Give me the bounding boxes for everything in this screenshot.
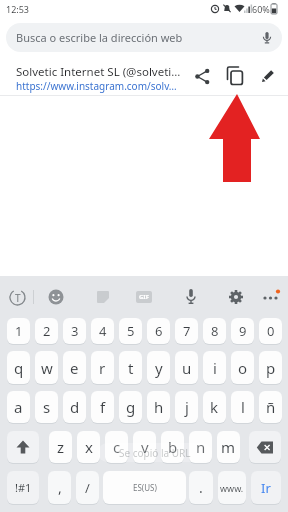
button[interactable]: , [48,471,71,504]
staticText: k [210,397,219,417]
staticText: z [57,437,65,457]
staticText: 5 [127,322,135,340]
button[interactable] [228,289,244,305]
staticText: q [14,358,24,378]
button[interactable]: z [49,431,72,463]
button[interactable]: ES(US) [103,471,186,504]
button[interactable]: k [203,391,226,423]
staticText: f [100,397,106,417]
staticText: x [85,437,93,457]
staticText: y [155,358,163,378]
button[interactable]: i [203,351,226,384]
staticText: 60% [252,3,270,15]
button[interactable]: l [231,391,254,423]
button[interactable]: x [77,431,100,463]
button[interactable]: j [175,391,198,423]
staticText: w [41,358,53,378]
button[interactable] [249,431,281,463]
staticText: o [238,358,248,378]
button[interactable]: b [161,431,184,463]
button[interactable]: g [119,391,142,423]
staticText: c [113,437,121,457]
button[interactable]: 7 [175,318,198,344]
button[interactable]: q [7,351,30,384]
button[interactable]: . [189,471,213,504]
staticText: n [196,437,206,457]
button[interactable]: !#1 [7,471,39,504]
button[interactable] [48,289,64,305]
staticText: GIF [139,293,149,301]
button[interactable]: 2 [35,318,58,344]
button[interactable]: 0 [259,318,282,344]
staticText: m [221,437,236,457]
button[interactable]: 6 [147,318,170,344]
staticText: t [128,358,134,378]
staticText: 8 [211,322,219,340]
staticText: . [199,478,203,497]
staticText: 2 [43,322,51,340]
staticText: T [15,291,21,305]
button[interactable]: Solvetic Internet SL (@solveti… [0,56,288,95]
staticText: Busca o escribe la dirección web [16,30,183,45]
staticText: Solvetic Internet SL (@solveti… [16,64,188,80]
button[interactable] [8,288,27,307]
button[interactable]: 9 [231,318,254,344]
staticText: r [99,358,106,378]
button[interactable]: s [35,391,58,423]
button[interactable]: GIF [136,291,152,303]
button[interactable]: a [7,391,30,423]
button[interactable]: r [91,351,114,384]
staticText: s [43,397,51,417]
button[interactable] [262,289,282,305]
staticText: i [213,358,217,378]
staticText: ñ [266,397,276,417]
button[interactable]: m [217,431,240,463]
button[interactable]: y [147,351,170,384]
staticText: 6 [155,322,163,340]
staticText: 12:53 [6,3,30,15]
staticText: a [14,397,23,417]
staticText: h [154,397,164,417]
button[interactable]: 1 [7,318,30,344]
button[interactable]: v [133,431,156,463]
button[interactable]: Busca o escribe la dirección web [6,23,282,52]
button[interactable]: www. [218,471,246,504]
button[interactable]: 8 [203,318,226,344]
staticText: p [266,358,276,378]
button[interactable]: 5 [119,318,142,344]
button[interactable] [260,31,274,45]
button[interactable]: h [147,391,170,423]
button[interactable]: o [231,351,254,384]
button[interactable]: / [76,471,99,504]
staticText: , [58,478,62,497]
staticText: e [70,358,79,378]
button[interactable]: u [175,351,198,384]
button[interactable]: e [63,351,86,384]
staticText: 4 [99,322,107,340]
staticText: Ir [261,479,271,497]
button[interactable]: 4 [91,318,114,344]
staticText: ES(US) [133,482,157,493]
staticText: www. [220,482,244,494]
staticText: 9 [239,322,247,340]
button[interactable]: w [35,351,58,384]
button[interactable] [184,288,198,306]
button[interactable] [259,68,276,85]
button[interactable]: c [105,431,128,463]
button[interactable]: ñ [259,391,282,423]
button[interactable]: Ir [251,471,281,504]
button[interactable] [195,69,210,84]
button[interactable] [7,431,39,463]
button[interactable]: d [63,391,86,423]
button[interactable]: 3 [63,318,86,344]
staticText: b [168,437,178,457]
staticText: j [185,397,189,417]
button[interactable]: t [119,351,142,384]
button[interactable] [96,290,110,304]
button[interactable]: p [259,351,282,384]
button[interactable]: n [189,431,212,463]
button[interactable]: f [91,391,114,423]
staticText: d [70,397,80,417]
button[interactable] [226,65,246,87]
staticText: 1 [15,322,23,340]
